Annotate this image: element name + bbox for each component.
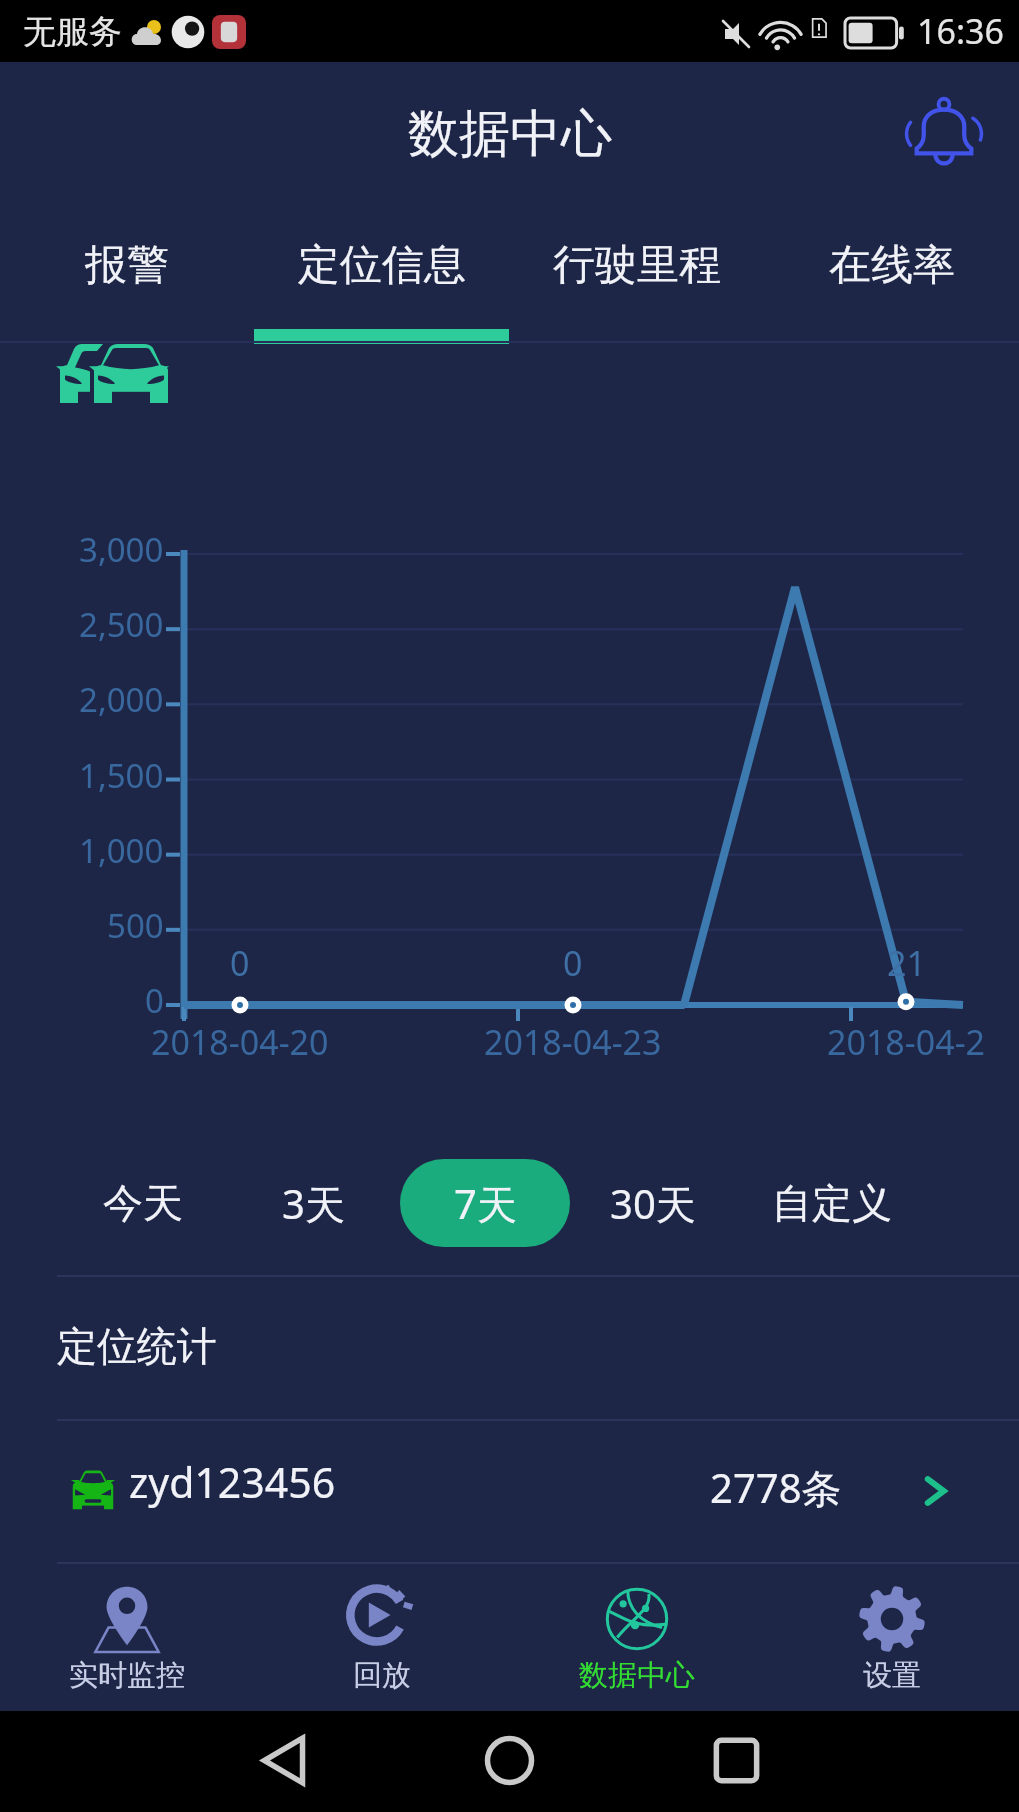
staticText: 定位信息 [298, 239, 466, 292]
staticText: 定位统计 [57, 1321, 217, 1371]
button[interactable]: 今天 [58, 1159, 228, 1247]
staticText: 7天 [454, 1176, 517, 1231]
staticText: 16:36 [917, 8, 1004, 54]
button[interactable]: Back [258, 1734, 311, 1787]
button[interactable]: 实时监控 [0, 1564, 254, 1711]
staticText: 1,000 [79, 828, 164, 873]
staticText: 在线率 [829, 239, 955, 292]
staticText: 2018-04-20 [151, 1019, 329, 1065]
staticText: zyd123456 [129, 1454, 336, 1510]
staticText: 无服务 [23, 11, 122, 53]
button[interactable]: 定位信息 [254, 192, 509, 341]
button[interactable]: 30天 [568, 1159, 738, 1247]
staticText: 3天 [282, 1176, 345, 1231]
button[interactable]: 行驶里程 [509, 192, 764, 341]
staticText: 设置 [863, 1657, 921, 1694]
staticText: 0 [230, 940, 250, 986]
staticText: 今天 [103, 1178, 183, 1228]
staticText: 数据中心 [579, 1657, 695, 1694]
button[interactable]: 7天 [400, 1159, 570, 1247]
staticText: 自定义 [772, 1178, 892, 1228]
staticText: 数据中心 [408, 102, 612, 166]
staticText: 实时监控 [69, 1657, 185, 1694]
staticText: 0 [145, 978, 164, 1023]
button[interactable]: zyd123456 [0, 1421, 1019, 1562]
button[interactable]: 数据中心 [509, 1564, 764, 1711]
staticText: 2778条 [710, 1460, 842, 1515]
button[interactable]: 3天 [228, 1159, 398, 1247]
staticText: 0 [563, 940, 583, 986]
staticText: 2018-04-23 [484, 1019, 662, 1065]
button[interactable]: Notifications [905, 94, 983, 172]
button[interactable]: 自定义 [747, 1159, 917, 1247]
staticText: 报警 [85, 239, 169, 292]
staticText: 3,000 [79, 527, 164, 572]
button[interactable]: 在线率 [764, 192, 1019, 341]
staticText: 21 [887, 940, 926, 986]
staticText: 30天 [610, 1176, 696, 1231]
button[interactable]: 报警 [0, 192, 254, 341]
staticText: 500 [107, 903, 164, 948]
staticText: 回放 [353, 1657, 411, 1694]
button[interactable]: Home [482, 1733, 537, 1788]
button[interactable]: Recents [710, 1734, 763, 1787]
staticText: 2,500 [79, 602, 164, 647]
staticText: 2,000 [79, 677, 164, 722]
staticText: 1,500 [79, 753, 164, 798]
staticText: 行驶里程 [553, 239, 721, 292]
button[interactable]: 回放 [254, 1564, 509, 1711]
button[interactable]: 设置 [764, 1564, 1019, 1711]
staticText: 2018-04-2 [827, 1019, 986, 1065]
